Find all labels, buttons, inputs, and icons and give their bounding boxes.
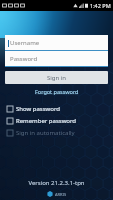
button[interactable]: Sign in bbox=[5, 71, 108, 84]
staticText: Sign in automatically bbox=[16, 129, 75, 137]
staticText: 1:42 PM bbox=[90, 2, 111, 9]
staticText: Remember password bbox=[16, 117, 77, 125]
staticText: Forgot password bbox=[35, 88, 79, 95]
button[interactable]: Show password bbox=[7, 103, 113, 115]
button[interactable]: Username bbox=[5, 35, 108, 50]
button[interactable]: Password bbox=[5, 51, 108, 66]
staticText: Sign in bbox=[47, 74, 67, 82]
button[interactable]: Sign in automatically bbox=[7, 127, 113, 139]
staticText: Username bbox=[10, 39, 40, 47]
staticText: Show password bbox=[16, 105, 60, 113]
staticText: Version 21.2.3.1-tpn bbox=[28, 179, 85, 187]
button[interactable]: Forgot password bbox=[5, 88, 108, 95]
button[interactable]: Remember password bbox=[7, 115, 113, 127]
staticText: ARRIS bbox=[55, 192, 67, 197]
staticText: Password bbox=[10, 55, 38, 63]
